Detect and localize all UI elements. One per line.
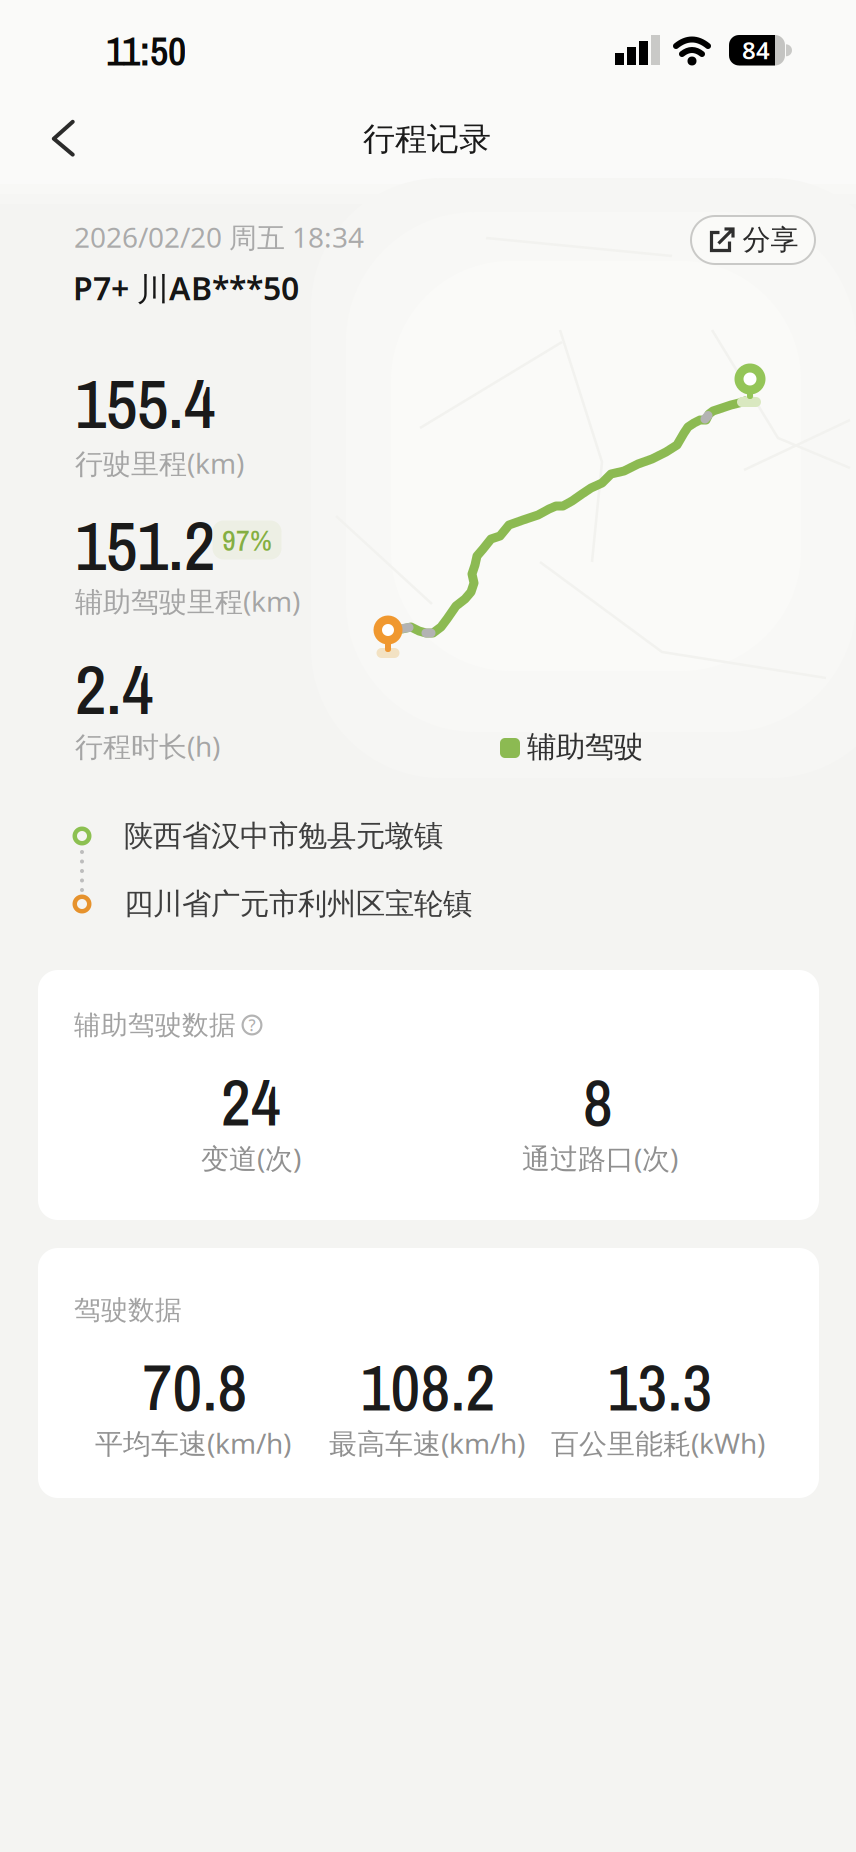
staticText: 通过路口(次): [522, 1139, 678, 1177]
button[interactable]: ?: [241, 1014, 262, 1036]
staticText: 行程记录: [363, 119, 491, 159]
staticText: 辅助驾驶里程(km): [75, 582, 300, 620]
staticText: 70.8: [142, 1343, 247, 1431]
staticText: 24: [221, 1058, 281, 1146]
button[interactable]: 分享: [690, 215, 816, 265]
staticText: 97%: [222, 520, 272, 560]
staticText: 辅助驾驶数据: [74, 1009, 236, 1041]
staticText: 四川省广元市利州区宝轮镇: [124, 886, 472, 922]
staticText: 84: [742, 34, 770, 66]
button[interactable]: [46, 116, 92, 162]
staticText: 108.2: [360, 1343, 495, 1431]
staticText: 2026/02/20 周五 18:34: [74, 218, 364, 256]
staticText: 百公里能耗(kWh): [551, 1424, 765, 1462]
staticText: P7+ 川AB***50: [73, 267, 299, 309]
staticText: 11:50: [106, 24, 186, 78]
staticText: 驾驶数据: [74, 1294, 182, 1326]
staticText: 行驶里程(km): [75, 444, 244, 482]
staticText: 13.3: [607, 1343, 712, 1431]
staticText: 平均车速(km/h): [95, 1424, 291, 1462]
staticText: 陕西省汉中市勉县元墩镇: [124, 818, 443, 854]
staticText: 变道(次): [201, 1139, 301, 1177]
staticText: 8: [583, 1058, 613, 1146]
staticText: 行程时长(h): [75, 727, 220, 765]
staticText: 分享: [742, 223, 798, 257]
staticText: 最高车速(km/h): [329, 1424, 525, 1462]
staticText: 辅助驾驶: [527, 729, 643, 765]
staticText: 151.2: [75, 498, 215, 591]
staticText: ?: [248, 1014, 255, 1036]
staticText: 2.4: [75, 642, 153, 735]
staticText: 155.4: [75, 356, 215, 449]
